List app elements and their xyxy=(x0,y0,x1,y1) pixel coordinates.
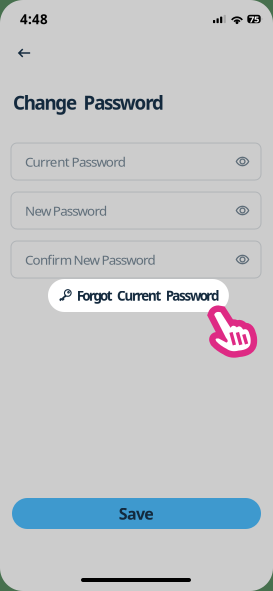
staticText: Forgot xyxy=(77,287,113,304)
button[interactable]: Show password xyxy=(232,249,252,269)
staticText: Password xyxy=(166,287,219,304)
staticText: New Password xyxy=(25,202,107,219)
staticText: 75 xyxy=(249,13,259,25)
button[interactable]: Show password xyxy=(232,200,252,220)
staticText: Password xyxy=(83,90,164,115)
button[interactable]: Save xyxy=(12,498,261,529)
button[interactable]: Forgot xyxy=(48,279,229,312)
button[interactable]: Back xyxy=(10,40,38,66)
staticText: Change xyxy=(13,90,77,115)
staticText: Confirm New Password xyxy=(25,251,156,268)
staticText: 4:48 xyxy=(20,10,48,28)
staticText: Current xyxy=(117,287,161,304)
staticText: Save xyxy=(119,503,154,524)
button[interactable]: Show password xyxy=(232,151,252,171)
staticText: Current Password xyxy=(25,153,126,170)
